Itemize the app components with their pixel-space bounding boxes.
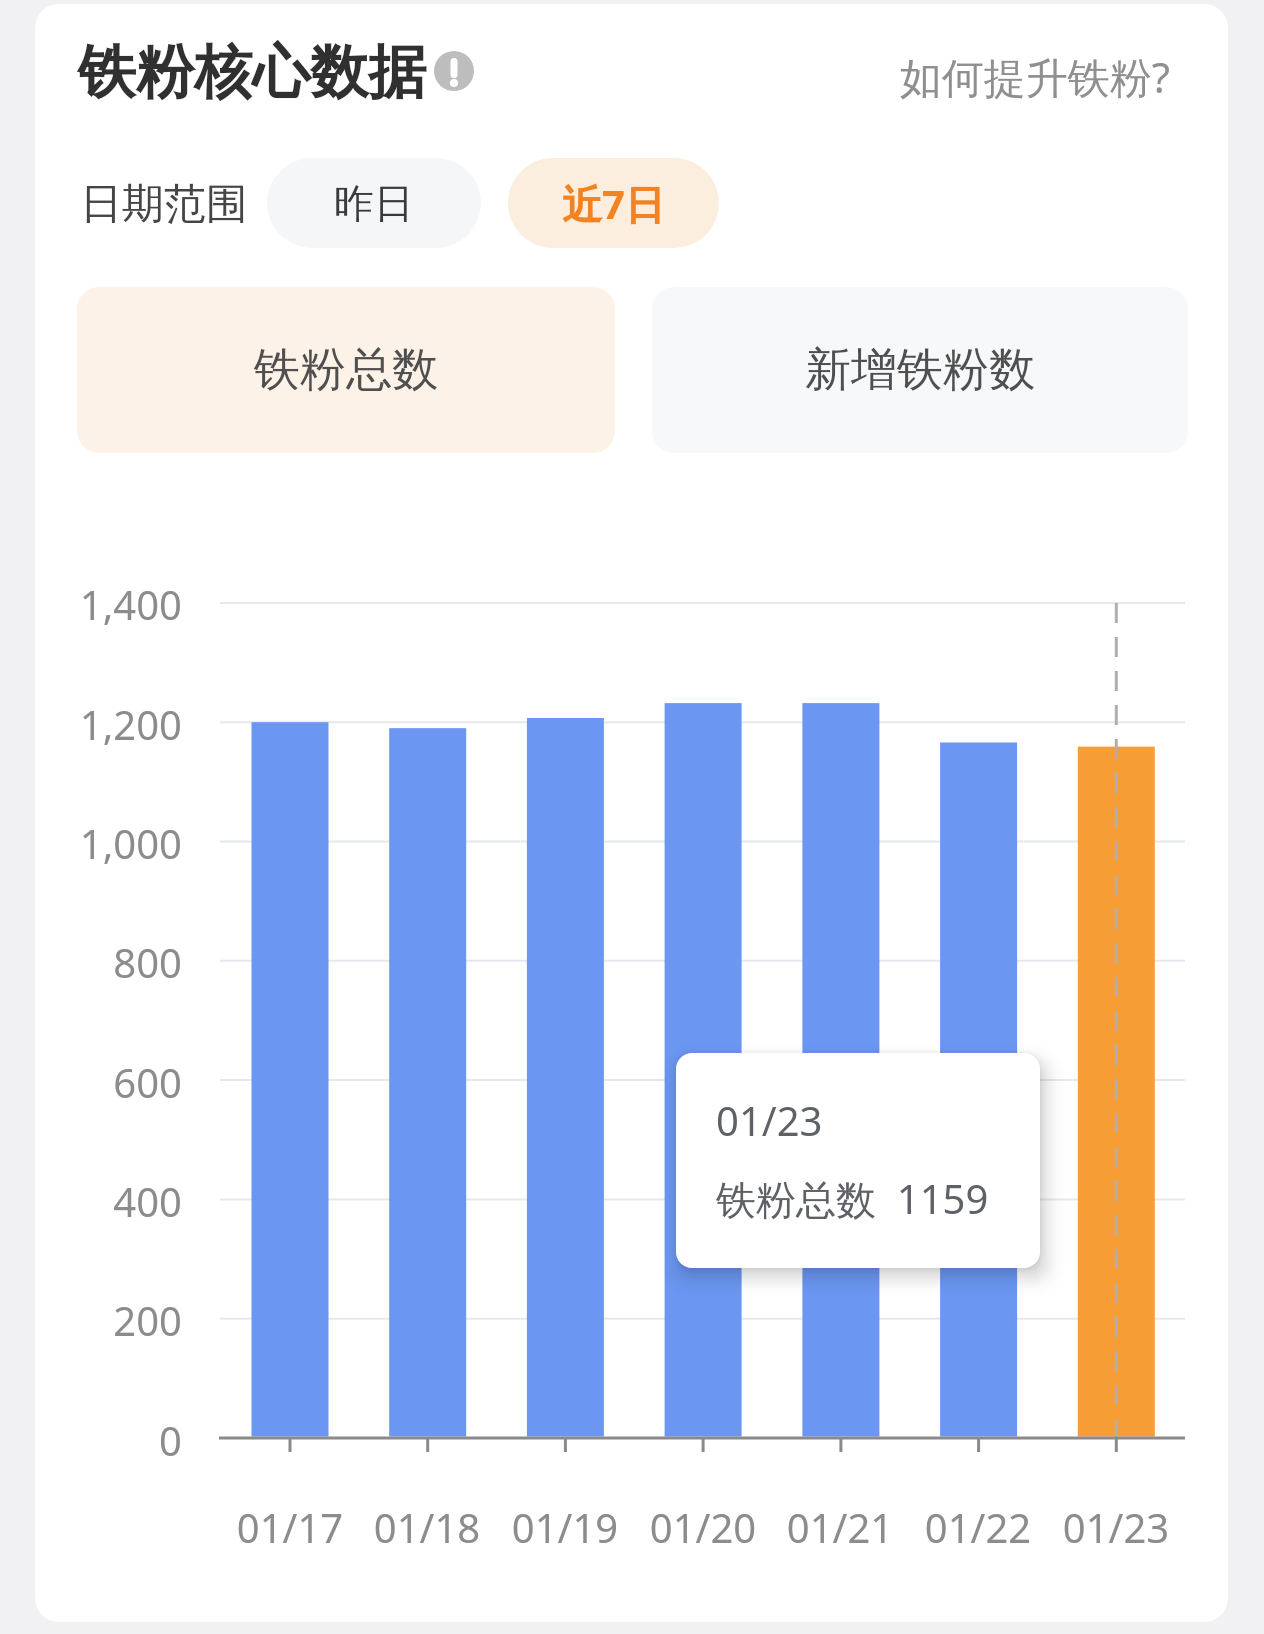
staticText: 01/23 bbox=[1041, 1500, 1191, 1560]
staticText: 0 bbox=[40, 1413, 182, 1473]
staticText: 铁粉核心数据 bbox=[78, 36, 426, 109]
staticText: 新增铁粉数 bbox=[805, 341, 1035, 399]
staticText: 01/21 bbox=[765, 1500, 915, 1560]
staticText: 铁粉总数 1159 bbox=[716, 1171, 989, 1226]
button[interactable]: 如何提升铁粉? bbox=[880, 48, 1170, 102]
button[interactable]: 新增铁粉数 bbox=[652, 287, 1188, 453]
staticText: 1,000 bbox=[40, 816, 182, 876]
button[interactable]: 昨日 bbox=[267, 158, 481, 248]
staticText: 昨日 bbox=[334, 178, 414, 228]
staticText: 01/22 bbox=[903, 1500, 1053, 1560]
staticText: 01/18 bbox=[352, 1500, 502, 1560]
staticText: 铁粉总数 bbox=[254, 341, 438, 399]
button[interactable]: 近7日 bbox=[508, 158, 719, 248]
staticText: 01/17 bbox=[215, 1500, 365, 1560]
staticText: 200 bbox=[40, 1293, 182, 1353]
staticText: 1,400 bbox=[40, 577, 182, 637]
button[interactable]: 铁粉总数 bbox=[77, 287, 615, 453]
staticText: 近7日 bbox=[562, 176, 665, 231]
staticText: 日期范围 bbox=[80, 178, 248, 231]
staticText: 400 bbox=[40, 1174, 182, 1234]
staticText: 01/20 bbox=[628, 1500, 778, 1560]
staticText: 如何提升铁粉? bbox=[880, 48, 1170, 102]
staticText: 1,200 bbox=[40, 697, 182, 757]
staticText: 600 bbox=[40, 1055, 182, 1115]
staticText: 800 bbox=[40, 935, 182, 995]
staticText: 01/23 bbox=[716, 1093, 823, 1147]
staticText: 01/19 bbox=[490, 1500, 640, 1560]
